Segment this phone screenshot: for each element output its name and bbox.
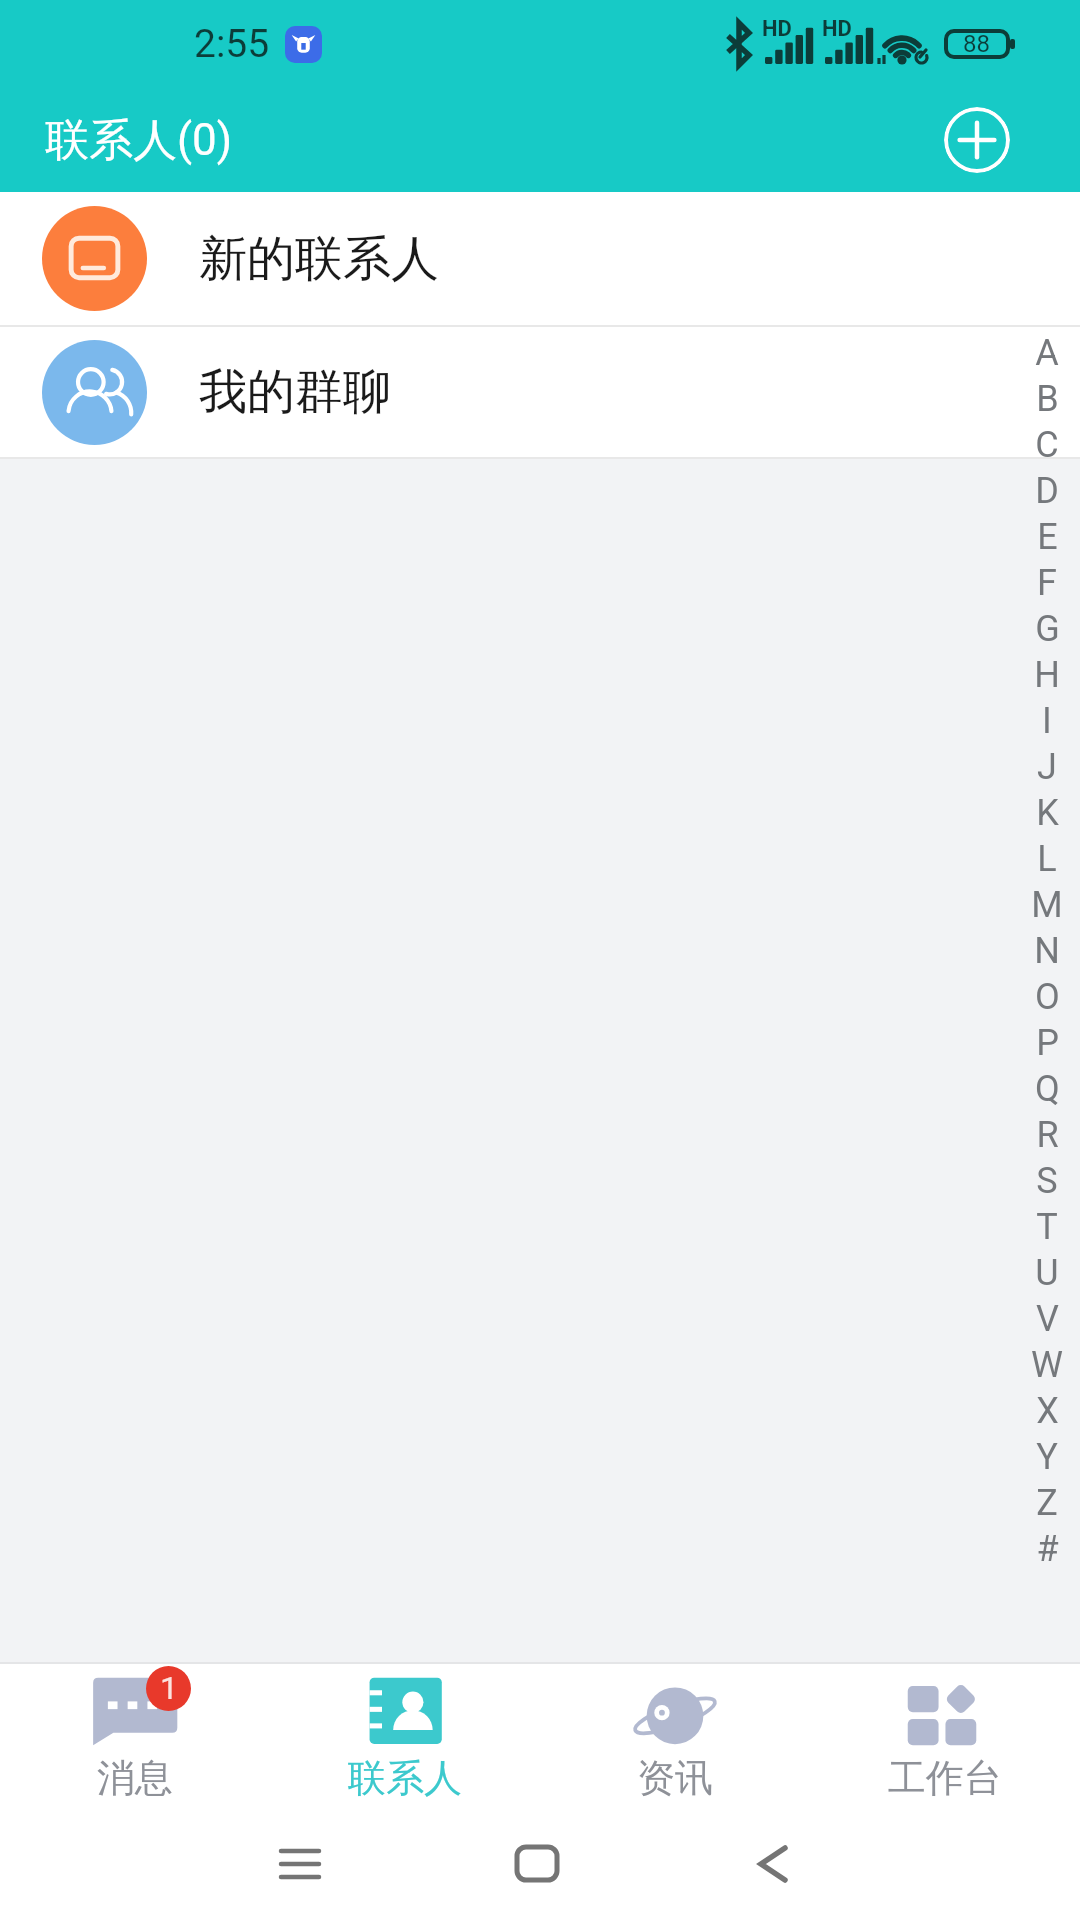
button[interactable]: J (1014, 744, 1080, 790)
staticText: K (1036, 792, 1059, 834)
button[interactable]: # (1014, 1526, 1080, 1572)
button[interactable]: H (1014, 652, 1080, 698)
staticText: 联系人 (348, 1754, 462, 1802)
staticText: 我的群聊 (199, 362, 391, 422)
button[interactable]: Q (1014, 1066, 1080, 1112)
staticText: W (1031, 1344, 1063, 1386)
button[interactable]: C (1014, 422, 1080, 468)
button[interactable]: R (1014, 1112, 1080, 1158)
staticText: F (1037, 562, 1057, 604)
button[interactable]: F (1014, 560, 1080, 606)
staticText: N (1034, 930, 1060, 972)
staticText: 联系人(0) (45, 113, 233, 168)
staticText: I (1042, 700, 1052, 742)
staticText: 1 (160, 1669, 178, 1707)
staticText: H (1034, 654, 1060, 696)
staticText: S (1036, 1160, 1058, 1202)
staticText: X (1036, 1390, 1059, 1432)
staticText: 消息 (97, 1754, 173, 1802)
staticText: T (1036, 1206, 1058, 1248)
button[interactable]: W (1014, 1342, 1080, 1388)
staticText: 工作台 (888, 1754, 1002, 1802)
staticText: 新的联系人 (199, 229, 439, 289)
button[interactable]: Home (480, 1824, 600, 1908)
button[interactable]: V (1014, 1296, 1080, 1342)
staticText: Q (1035, 1068, 1060, 1110)
staticText: 88 (963, 30, 990, 58)
button[interactable]: D (1014, 468, 1080, 514)
staticText: B (1036, 378, 1059, 420)
button[interactable]: 工作台 (810, 1664, 1080, 1812)
button[interactable]: L (1014, 836, 1080, 882)
staticText: A (1035, 332, 1059, 374)
staticText: Y (1036, 1436, 1058, 1478)
button[interactable]: X (1014, 1388, 1080, 1434)
staticText: G (1035, 608, 1060, 650)
staticText: HD (762, 16, 792, 42)
button[interactable]: S (1014, 1158, 1080, 1204)
button[interactable]: 1 (0, 1664, 270, 1812)
button[interactable]: A (1014, 330, 1080, 376)
button[interactable]: Back (713, 1824, 833, 1908)
button[interactable]: 联系人 (270, 1664, 540, 1812)
button[interactable]: O (1014, 974, 1080, 1020)
staticText: U (1035, 1252, 1059, 1294)
staticText: C (1035, 424, 1059, 466)
button[interactable]: T (1014, 1204, 1080, 1250)
staticText: J (1037, 746, 1057, 788)
button[interactable]: B (1014, 376, 1080, 422)
staticText: 2:55 (194, 21, 270, 67)
button[interactable]: I (1014, 698, 1080, 744)
staticText: Z (1036, 1482, 1058, 1524)
staticText: R (1036, 1114, 1059, 1156)
button[interactable]: Add contact (944, 107, 1010, 173)
button[interactable]: 资讯 (540, 1664, 810, 1812)
staticText: M (1031, 884, 1063, 926)
staticText: L (1037, 838, 1057, 880)
staticText: 资讯 (637, 1754, 713, 1802)
button[interactable]: E (1014, 514, 1080, 560)
button[interactable]: G (1014, 606, 1080, 652)
staticText: D (1035, 470, 1059, 512)
staticText: HD (822, 16, 852, 42)
staticText: V (1036, 1298, 1059, 1340)
button[interactable]: 新的联系人 (0, 192, 1080, 325)
staticText: E (1037, 516, 1058, 558)
button[interactable]: Z (1014, 1480, 1080, 1526)
button[interactable]: Y (1014, 1434, 1080, 1480)
button[interactable]: Recent apps (240, 1824, 360, 1908)
button[interactable]: U (1014, 1250, 1080, 1296)
button[interactable]: P (1014, 1020, 1080, 1066)
staticText: P (1036, 1022, 1059, 1064)
staticText: O (1035, 976, 1060, 1018)
staticText: # (1036, 1528, 1059, 1570)
button[interactable]: K (1014, 790, 1080, 836)
button[interactable]: N (1014, 928, 1080, 974)
button[interactable]: 我的群聊 (0, 327, 1080, 457)
button[interactable]: M (1014, 882, 1080, 928)
